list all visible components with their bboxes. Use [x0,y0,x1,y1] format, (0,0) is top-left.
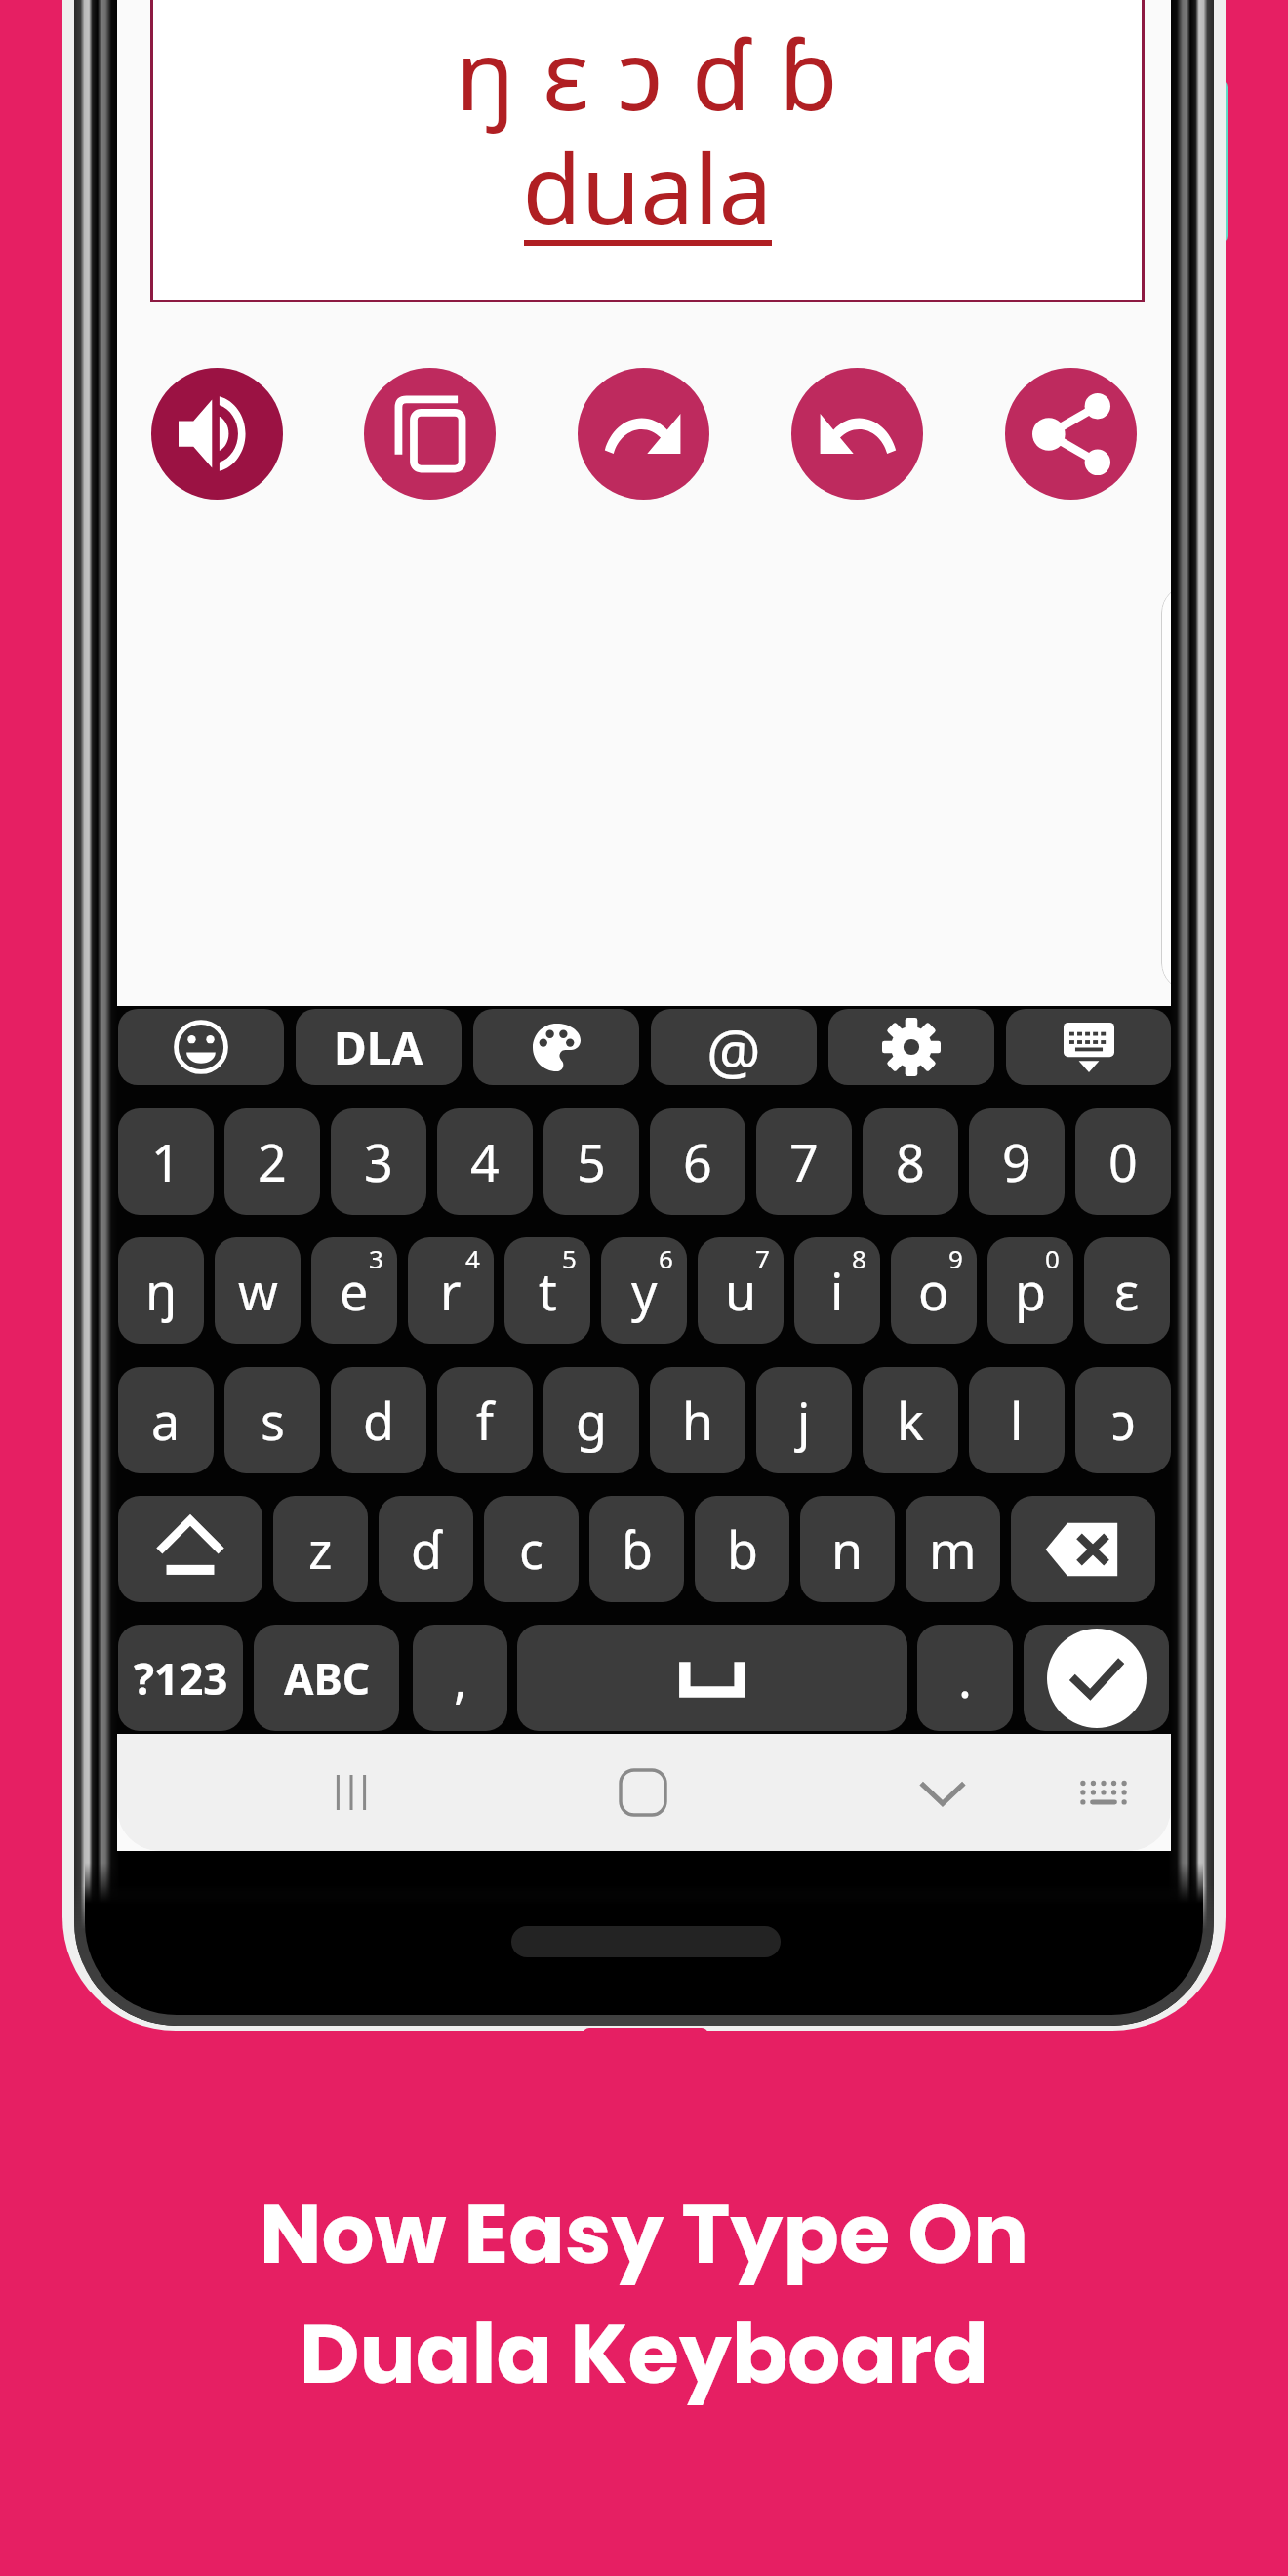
staticText: duala [150,122,1145,252]
button[interactable]: f [437,1367,533,1473]
button[interactable]: Keyboard tool [118,1009,284,1085]
staticText: 3 [364,1127,393,1196]
button[interactable]: . [917,1625,1013,1731]
button[interactable]: p [987,1237,1073,1344]
button[interactable]: w [215,1237,301,1344]
button[interactable]: Redo [578,368,709,500]
button[interactable]: ɗ [379,1496,473,1602]
staticText: Now Easy Type On [0,2176,1288,2292]
button[interactable]: ɔ [1075,1367,1171,1473]
button[interactable]: l [969,1367,1065,1473]
staticText: 5 [562,1241,577,1275]
button[interactable]: g [543,1367,639,1473]
staticText: 8 [852,1241,866,1275]
button[interactable]: o [891,1237,977,1344]
staticText: f [476,1386,494,1455]
staticText: s [261,1386,285,1455]
staticText: ɗ [411,1514,442,1584]
button[interactable]: n [800,1496,895,1602]
button[interactable]: 1 [118,1108,214,1215]
staticText: g [576,1386,607,1455]
button[interactable]: ɓ [589,1496,684,1602]
button[interactable]: b [695,1496,789,1602]
staticText: 6 [659,1241,673,1275]
button[interactable]: ?123 [118,1625,243,1731]
button[interactable]: y [601,1237,687,1344]
staticText: d [363,1386,394,1455]
button[interactable]: Share [1005,368,1137,500]
staticText: ɓ [622,1514,653,1584]
staticText: 2 [258,1127,287,1196]
button[interactable]: ŋ [118,1237,204,1344]
staticText: 3 [369,1241,383,1275]
button[interactable]: j [756,1367,852,1473]
staticText: DLA [334,1017,423,1078]
staticText: m [929,1514,977,1584]
staticText: 7 [789,1127,819,1196]
button[interactable]: ABC [254,1625,399,1731]
staticText: . [958,1643,972,1712]
button[interactable]: u [698,1237,784,1344]
staticText: , [454,1643,467,1712]
button[interactable]: h [650,1367,745,1473]
staticText: n [831,1514,864,1584]
button[interactable]: @ [651,1009,817,1085]
button[interactable]: Navigation [599,1734,687,1851]
staticText: h [682,1386,714,1455]
button[interactable]: 5 [543,1108,639,1215]
staticText: k [897,1386,924,1455]
button[interactable]: 4 [437,1108,533,1215]
button[interactable]: Undo [791,368,923,500]
button[interactable]: 8 [863,1108,958,1215]
staticText: o [918,1256,949,1325]
button[interactable]: Key [517,1625,907,1731]
button[interactable]: r [408,1237,494,1344]
button[interactable]: Keyboard tool [1006,1009,1171,1085]
button[interactable]: 0 [1075,1108,1171,1215]
staticText: @ [706,1009,761,1085]
button[interactable]: Keyboard tool [473,1009,639,1085]
button[interactable]: d [331,1367,426,1473]
button[interactable]: k [863,1367,958,1473]
staticText: w [238,1256,278,1325]
button[interactable]: 7 [756,1108,852,1215]
button[interactable]: Key [1011,1496,1155,1602]
button[interactable]: z [273,1496,368,1602]
staticText: 9 [1002,1127,1031,1196]
staticText: l [1010,1386,1024,1455]
button[interactable]: t [504,1237,590,1344]
staticText: c [519,1514,543,1584]
staticText: 4 [470,1127,500,1196]
staticText: t [539,1256,557,1325]
button[interactable]: Navigation [899,1734,986,1851]
button[interactable]: i [794,1237,880,1344]
staticText: ?123 [134,1649,228,1708]
button[interactable]: DLA [296,1009,462,1085]
staticText: 0 [1045,1241,1060,1275]
button[interactable]: 3 [331,1108,426,1215]
button[interactable]: 2 [224,1108,320,1215]
button[interactable]: , [413,1625,507,1731]
button[interactable]: 6 [650,1108,745,1215]
staticText: e [340,1256,369,1325]
staticText: ŋ ɛ ɔ ɗ ɓ [150,8,1145,138]
button[interactable]: ɛ [1084,1237,1170,1344]
button[interactable]: m [906,1496,1000,1602]
button[interactable]: s [224,1367,320,1473]
button[interactable]: c [484,1496,579,1602]
staticText: r [440,1256,462,1325]
button[interactable]: Keyboard tool [828,1009,994,1085]
button[interactable]: a [118,1367,214,1473]
staticText: j [797,1386,811,1455]
button[interactable]: 9 [969,1108,1065,1215]
button[interactable]: Navigation [307,1734,395,1851]
staticText: 6 [683,1127,712,1196]
button[interactable]: Key [1024,1625,1169,1731]
button[interactable]: Speak [151,368,283,500]
button[interactable]: Navigation [1060,1734,1147,1851]
staticText: p [1015,1256,1046,1325]
button[interactable]: Copy [364,368,496,500]
staticText: y [631,1256,658,1325]
button[interactable]: e [311,1237,397,1344]
button[interactable]: Key [118,1496,262,1602]
